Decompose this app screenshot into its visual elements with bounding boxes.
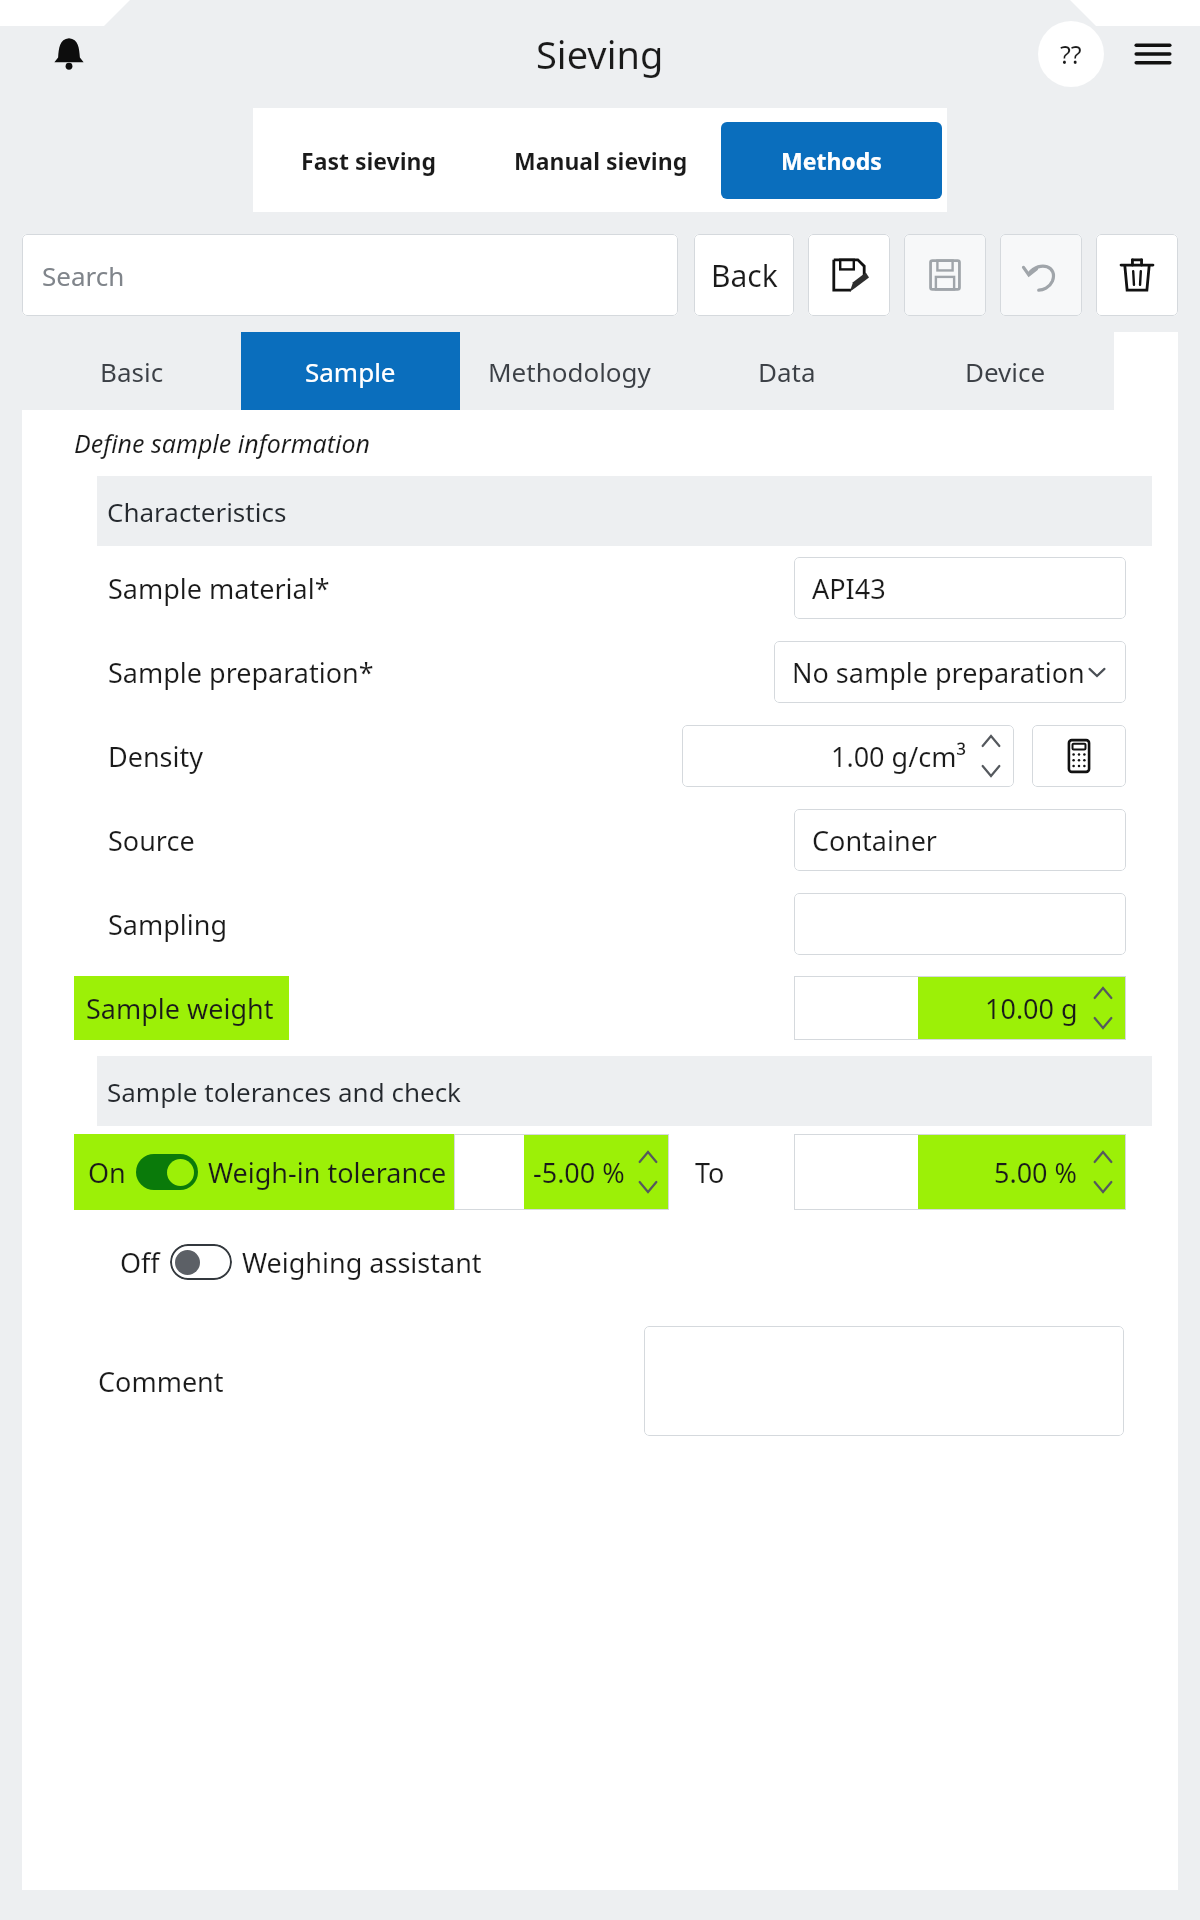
- staticText: Sampling: [108, 906, 228, 943]
- staticText: Methodology: [488, 354, 651, 389]
- staticText: 10.00 g: [985, 990, 1078, 1027]
- button[interactable]: Notifications: [46, 31, 92, 77]
- staticText: Sample material*: [108, 570, 330, 607]
- staticText: Sample tolerances and check: [107, 1074, 461, 1109]
- button[interactable]: [136, 1154, 198, 1190]
- staticText: ??: [1060, 37, 1082, 71]
- staticText: To: [695, 1154, 725, 1191]
- button[interactable]: Save: [904, 234, 986, 316]
- button[interactable]: No sample preparation: [774, 641, 1126, 703]
- button[interactable]: Help: [1038, 21, 1104, 87]
- button[interactable]: Manual sieving: [490, 122, 711, 199]
- button[interactable]: Sample weight: [74, 976, 1126, 1040]
- staticText: Sample preparation*: [108, 654, 374, 691]
- staticText: -5.00 %: [533, 1154, 625, 1191]
- button[interactable]: Back: [694, 234, 794, 316]
- button[interactable]: Undo: [1000, 234, 1082, 316]
- button[interactable]: [170, 1244, 232, 1280]
- button[interactable]: Search: [22, 234, 678, 316]
- staticText: Device: [965, 354, 1046, 389]
- staticText: Data: [758, 354, 816, 389]
- staticText: Density: [108, 738, 204, 775]
- button[interactable]: Off: [120, 1236, 482, 1288]
- button[interactable]: [794, 893, 1126, 955]
- button[interactable]: Basic: [22, 332, 241, 410]
- button[interactable]: 1.00 g/cm³: [682, 725, 1014, 787]
- staticText: Basic: [100, 354, 164, 389]
- button[interactable]: Methods: [721, 122, 942, 199]
- button[interactable]: Fast sieving: [258, 122, 480, 199]
- button[interactable]: Methodology: [460, 332, 678, 410]
- staticText: Sample weight: [86, 990, 274, 1027]
- button[interactable]: Delete: [1096, 234, 1178, 316]
- button[interactable]: Calculator: [1032, 725, 1126, 787]
- button[interactable]: Save as: [808, 234, 890, 316]
- staticText: Methods: [781, 145, 882, 176]
- button[interactable]: Menu: [1126, 27, 1180, 81]
- staticText: Weigh-in tolerance: [208, 1154, 447, 1191]
- staticText: Characteristics: [107, 494, 287, 529]
- staticText: No sample preparation: [792, 654, 1085, 691]
- button[interactable]: Data: [678, 332, 896, 410]
- staticText: 5.00 %: [994, 1154, 1078, 1191]
- button[interactable]: Sample: [241, 332, 460, 410]
- button[interactable]: API43: [794, 557, 1126, 619]
- button[interactable]: On: [74, 1134, 454, 1210]
- staticText: API43: [812, 570, 886, 607]
- staticText: Manual sieving: [514, 145, 688, 176]
- staticText: Container: [812, 822, 938, 859]
- staticText: On: [88, 1154, 126, 1191]
- staticText: Define sample information: [74, 426, 371, 460]
- staticText: Source: [108, 822, 195, 859]
- button[interactable]: [644, 1326, 1124, 1436]
- staticText: Sample: [305, 354, 396, 389]
- staticText: Fast sieving: [301, 145, 437, 176]
- staticText: Comment: [98, 1363, 224, 1400]
- staticText: Search: [42, 258, 125, 293]
- staticText: Back: [711, 255, 778, 296]
- staticText: Sieving: [536, 28, 664, 80]
- staticText: 1.00 g/cm³: [831, 738, 966, 775]
- staticText: Off: [120, 1244, 160, 1281]
- button[interactable]: Device: [896, 332, 1114, 410]
- button[interactable]: Container: [794, 809, 1126, 871]
- staticText: Weighing assistant: [242, 1244, 482, 1281]
